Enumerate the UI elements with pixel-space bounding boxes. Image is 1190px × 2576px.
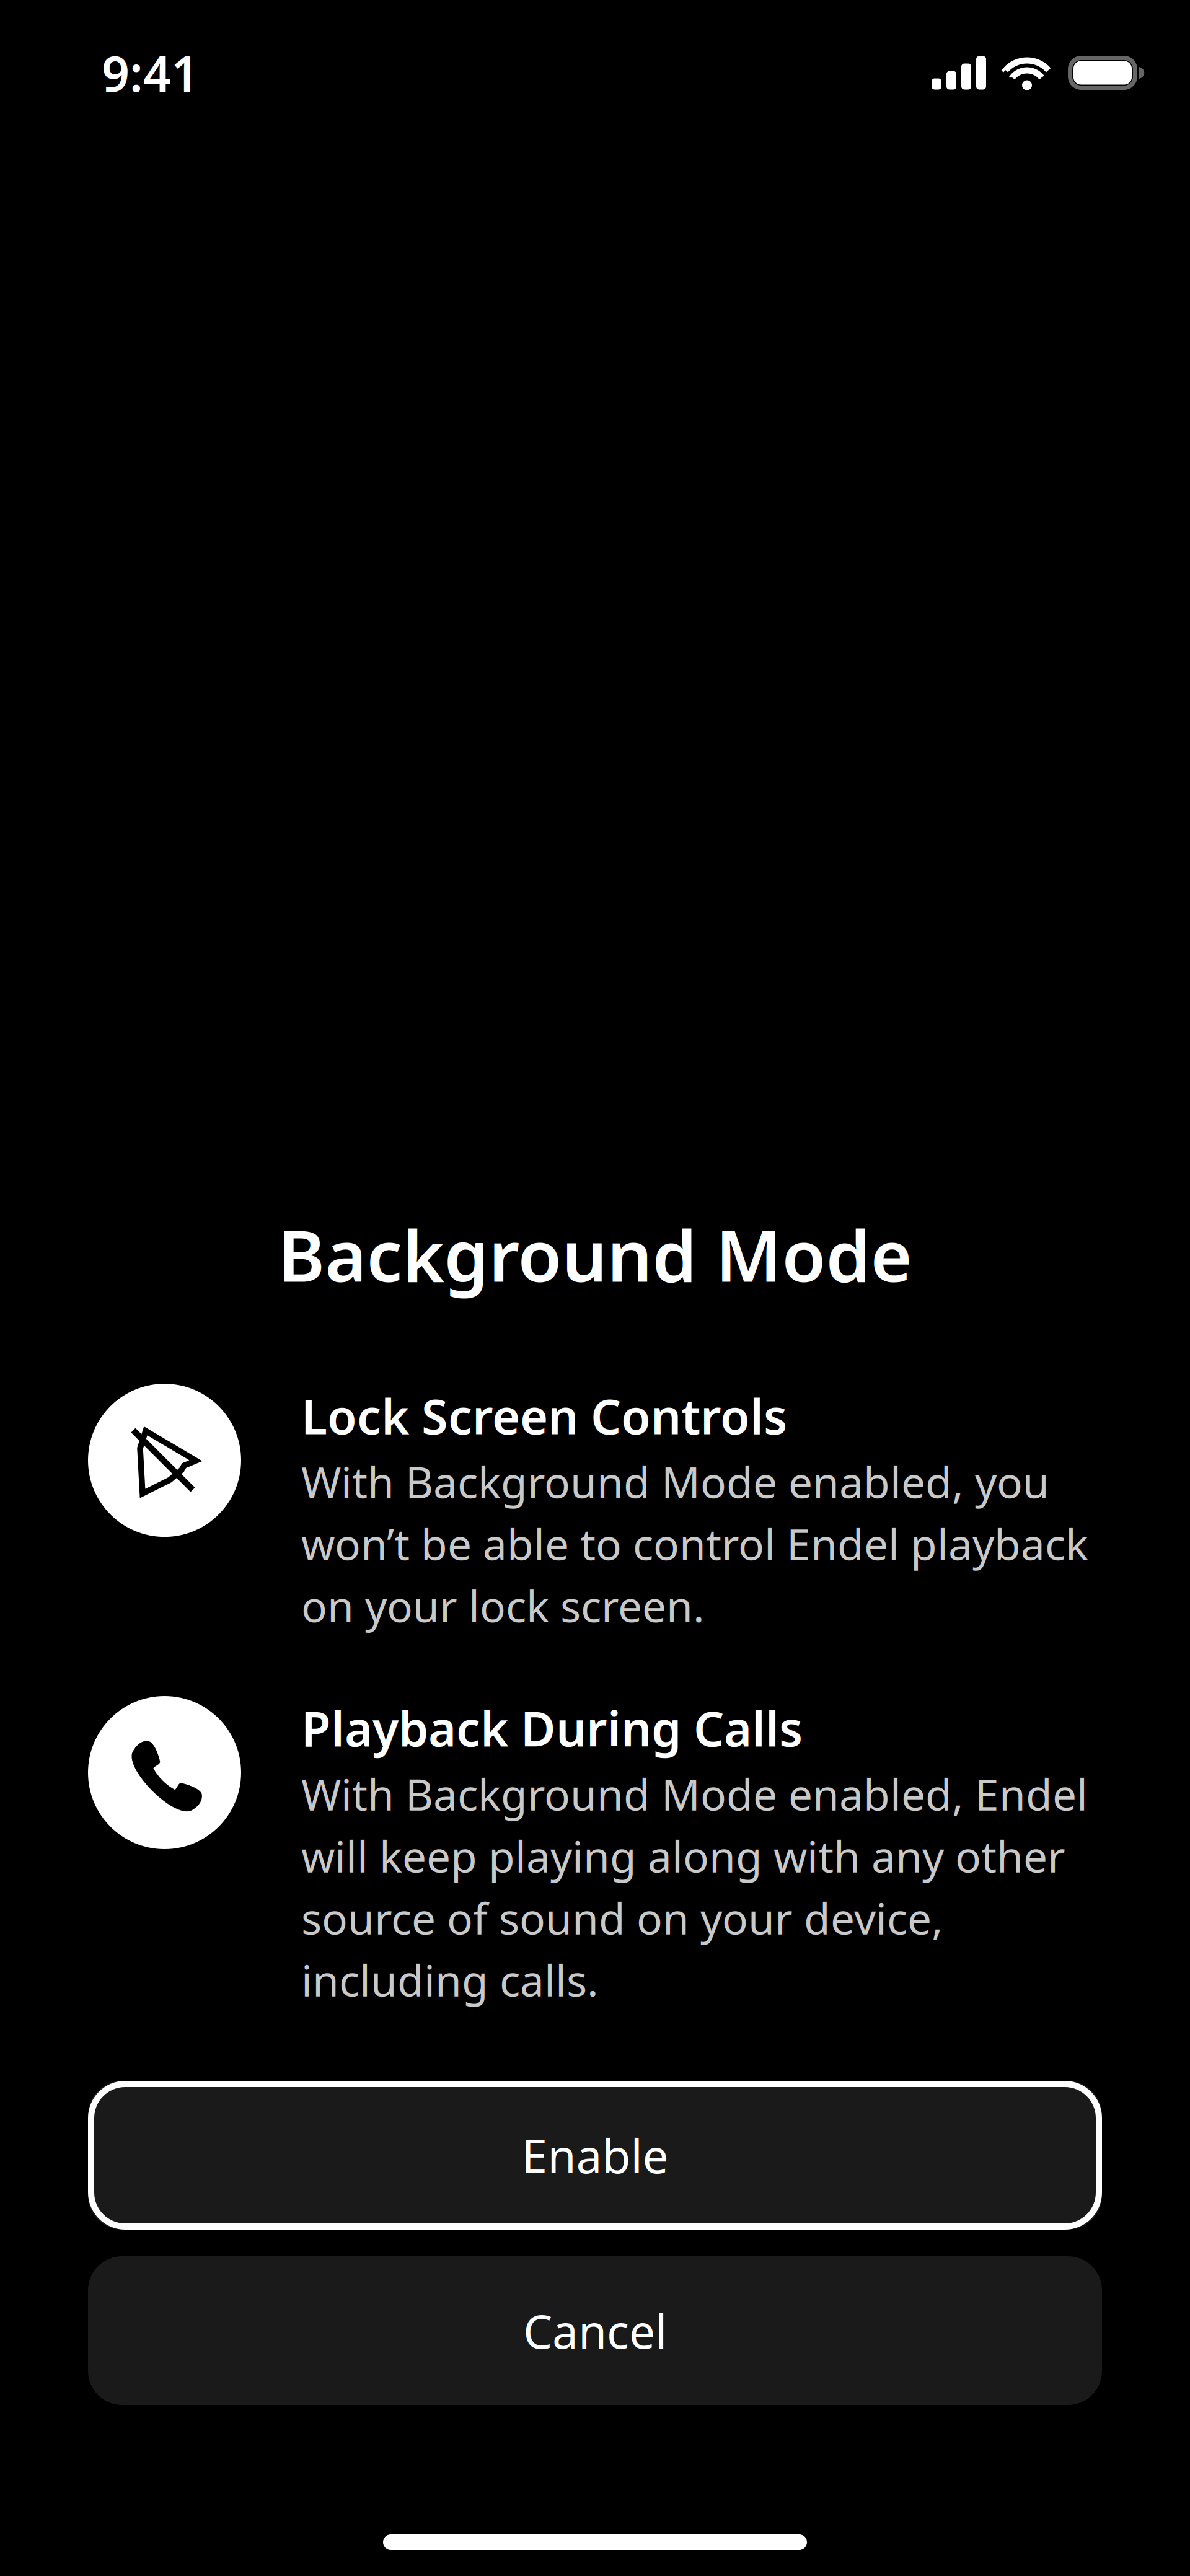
button[interactable]: Enable <box>88 2081 1102 2230</box>
staticText: Background Mode <box>278 1207 912 1301</box>
staticText: Playback During Calls <box>301 1696 803 1760</box>
staticText: Lock Screen Controls <box>301 1384 787 1447</box>
button[interactable]: Cancel <box>88 2256 1102 2405</box>
staticText: With Background Mode enabled, you won’t … <box>301 1453 1088 1634</box>
staticText: Cancel <box>523 2300 667 2361</box>
staticText: 9:41 <box>102 40 199 105</box>
staticText: Enable <box>522 2125 668 2186</box>
staticText: With Background Mode enabled, Endel will… <box>301 1765 1088 2008</box>
